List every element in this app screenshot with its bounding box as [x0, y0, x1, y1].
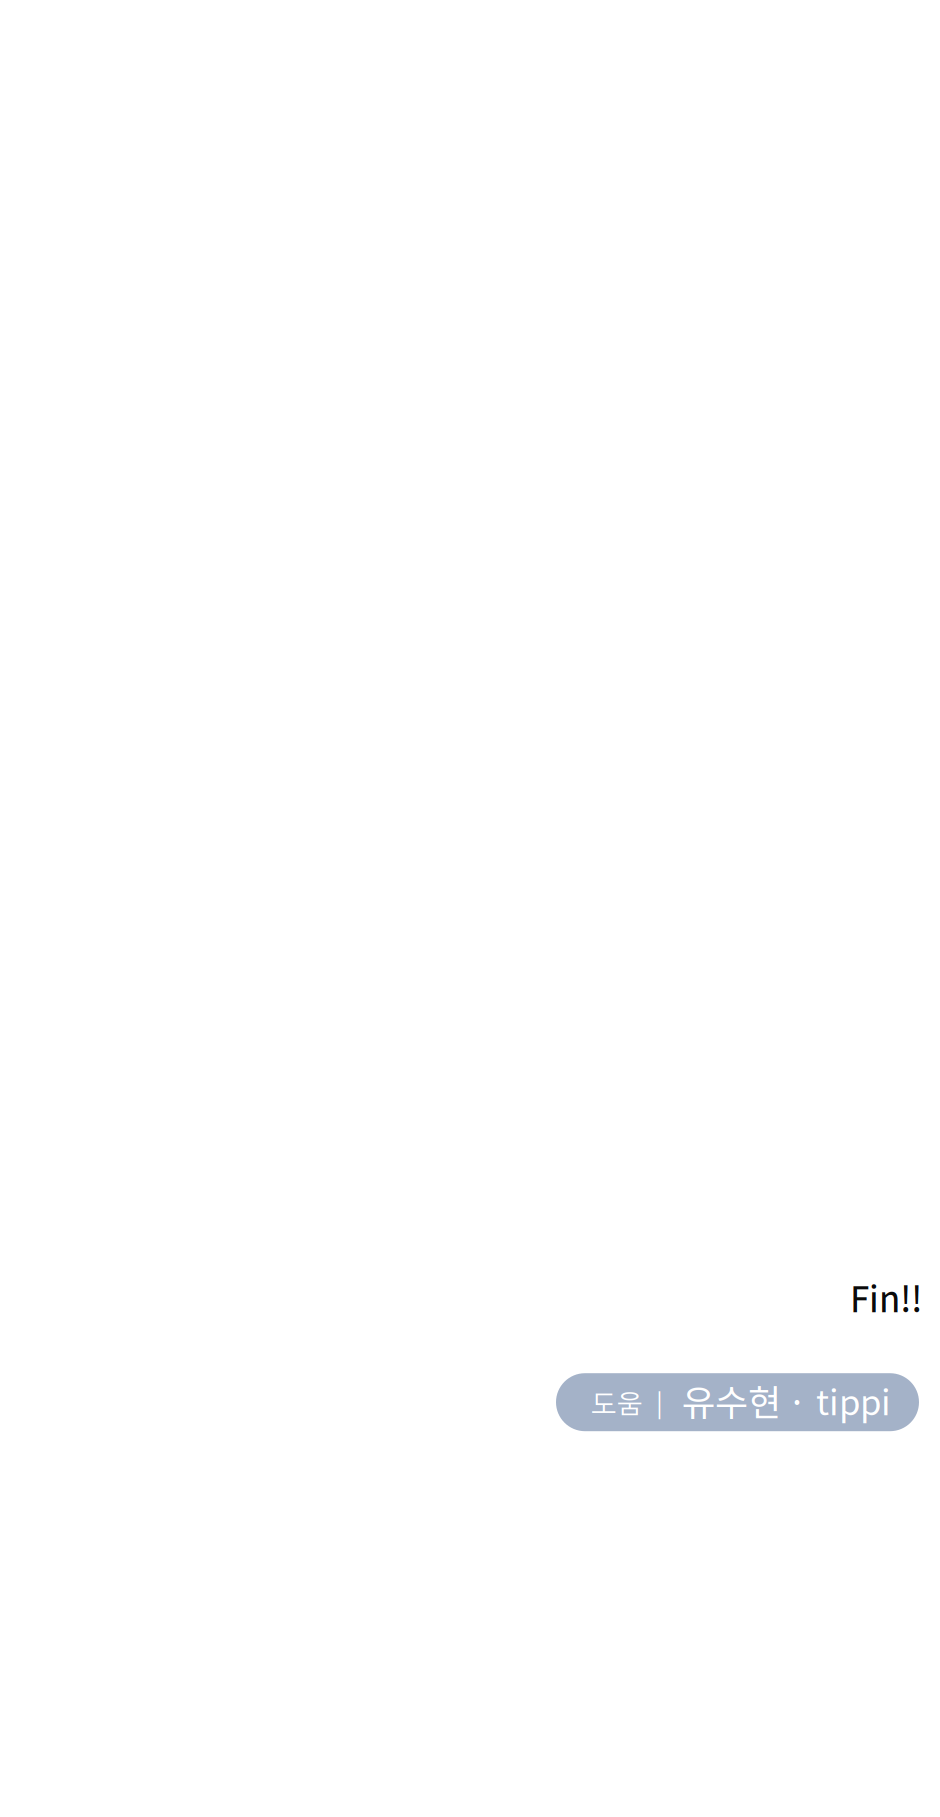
- staticText: 유수현: [682, 1374, 781, 1426]
- staticText: tippi: [816, 1375, 891, 1425]
- staticText: 도움: [591, 1392, 643, 1419]
- button[interactable]: 도움 유수현 · tippi: [556, 1373, 919, 1431]
- staticText: |: [656, 1383, 663, 1420]
- staticText: ·: [787, 1374, 807, 1426]
- staticText: Fin!!: [850, 1272, 922, 1322]
